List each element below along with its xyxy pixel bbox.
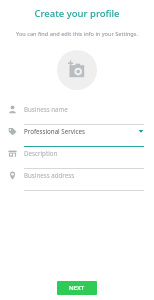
staticText: Professional Services — [24, 127, 85, 135]
button[interactable]: Add profile photo — [57, 50, 97, 90]
staticText: Description — [24, 149, 58, 157]
staticText: NEXT — [69, 284, 85, 292]
button[interactable]: Description — [0, 147, 154, 169]
button[interactable]: Professional Services — [0, 125, 154, 147]
button[interactable]: Business name — [0, 103, 154, 125]
staticText: Business address — [24, 171, 75, 179]
button[interactable]: NEXT — [57, 281, 97, 295]
button[interactable]: Business address — [0, 169, 154, 191]
staticText: Create your profile — [34, 7, 120, 20]
staticText: Business name — [24, 105, 68, 113]
staticText: You can find and edit this info in your … — [8, 30, 146, 38]
